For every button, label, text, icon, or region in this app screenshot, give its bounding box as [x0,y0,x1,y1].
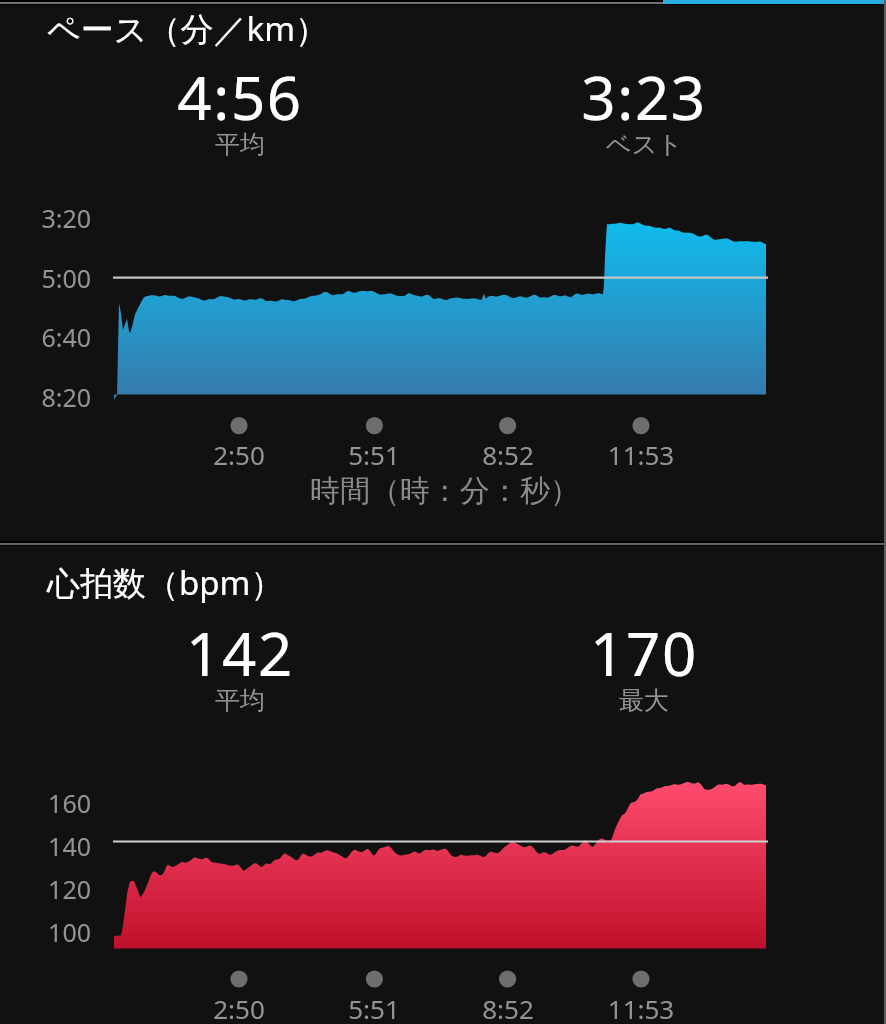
button[interactable]: Time marker 2:50 [159,969,319,1021]
staticText: 170 [590,612,698,694]
staticText: ベスト [606,129,683,160]
staticText: 3:23 [581,56,707,138]
staticText: 160 [0,786,91,820]
staticText: 8:52 [428,991,588,1024]
staticText: 最大 [619,685,669,716]
button[interactable]: Time marker 8:52 [428,415,588,467]
staticText: 8:20 [0,380,91,414]
staticText: 心拍数（bpm） [47,560,284,605]
button[interactable]: Time marker 11:53 [561,415,721,467]
staticText: 120 [0,872,91,906]
staticText: ペース（分／km） [47,6,329,51]
staticText: 11:53 [561,437,721,472]
staticText: 平均 [215,685,265,716]
button[interactable]: Time marker 5:51 [294,415,454,467]
staticText: 142 [186,612,294,694]
staticText: 100 [0,915,91,949]
staticText: 5:51 [294,991,454,1024]
button[interactable]: Time marker 5:51 [294,969,454,1021]
button[interactable]: Time marker 11:53 [561,969,721,1021]
staticText: 3:20 [0,201,91,235]
staticText: 4:56 [177,56,303,138]
button[interactable]: Pace chart [0,6,886,541]
staticText: 5:00 [0,261,91,295]
staticText: 2:50 [159,437,319,472]
button[interactable]: Heart rate chart [0,546,886,1024]
staticText: 6:40 [0,320,91,354]
staticText: 5:51 [294,437,454,472]
button[interactable]: 170 [504,612,784,725]
staticText: 平均 [215,129,265,160]
staticText: 8:52 [428,437,588,472]
staticText: 時間（時：分：秒） [310,472,580,510]
button[interactable]: Time marker 2:50 [159,415,319,467]
staticText: 140 [0,829,91,863]
button[interactable]: 4:56 [100,56,380,169]
button[interactable]: 142 [100,612,380,725]
staticText: 2:50 [159,991,319,1024]
button[interactable]: Time marker 8:52 [428,969,588,1021]
button[interactable]: 3:23 [504,56,784,169]
staticText: 11:53 [561,991,721,1024]
